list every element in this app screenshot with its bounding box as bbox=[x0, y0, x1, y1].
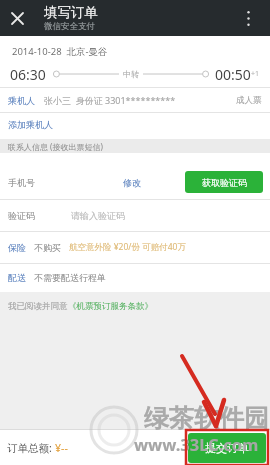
staticText: 请输入验证码 bbox=[71, 210, 125, 221]
staticText: 提交订单 bbox=[205, 441, 249, 455]
staticText: 张小三 身份证 3301********** bbox=[44, 94, 176, 106]
staticText: 验证码 bbox=[8, 210, 35, 221]
staticText: 我已阅读并同意 bbox=[8, 301, 68, 312]
staticText: 配送 bbox=[8, 272, 26, 283]
button[interactable]: 添加乘机人 bbox=[8, 112, 262, 136]
button[interactable]: More options bbox=[231, 1, 266, 36]
button[interactable]: 我已阅读并同意 bbox=[8, 296, 262, 316]
button[interactable]: 配送 bbox=[8, 263, 262, 292]
button[interactable]: 乘机人 bbox=[8, 88, 262, 112]
staticText: www.33LC.com bbox=[134, 433, 259, 455]
button[interactable]: 获取验证码 bbox=[185, 171, 263, 193]
staticText: 2014-10-28 北京-曼谷 bbox=[12, 45, 108, 58]
staticText: 不购买 bbox=[34, 242, 61, 253]
staticText: ¥-- bbox=[55, 441, 68, 455]
button[interactable]: 提交订单 bbox=[188, 433, 266, 463]
staticText: 获取验证码 bbox=[202, 177, 247, 188]
staticText: 填写订单 bbox=[44, 4, 98, 21]
staticText: 手机号 bbox=[8, 177, 35, 188]
button[interactable]: 保险 bbox=[8, 231, 262, 263]
staticText: 乘机人 bbox=[8, 95, 35, 106]
staticText: 微信安全支付 bbox=[44, 21, 95, 32]
staticText: 添加乘机人 bbox=[8, 119, 53, 130]
staticText: 保险 bbox=[8, 242, 26, 253]
staticText: 00:50 bbox=[215, 65, 251, 84]
staticText: 修改 bbox=[123, 177, 141, 188]
staticText: 中转 bbox=[123, 69, 139, 79]
staticText: 06:30 bbox=[10, 65, 46, 84]
staticText: 《机票预订服务条款》 bbox=[68, 301, 153, 312]
staticText: 订单总额: bbox=[7, 441, 55, 455]
staticText: 成人票 bbox=[236, 95, 262, 106]
staticText: 航空意外险 ¥20/份 可赔付40万 bbox=[69, 241, 186, 253]
staticText: 联系人信息 (接收出票短信) bbox=[8, 141, 103, 152]
staticText: 绿茶软件园 bbox=[144, 403, 269, 434]
staticText: 不需要配送行程单 bbox=[34, 272, 106, 283]
button[interactable]: Close bbox=[0, 1, 35, 36]
staticText: +1 bbox=[251, 69, 260, 79]
